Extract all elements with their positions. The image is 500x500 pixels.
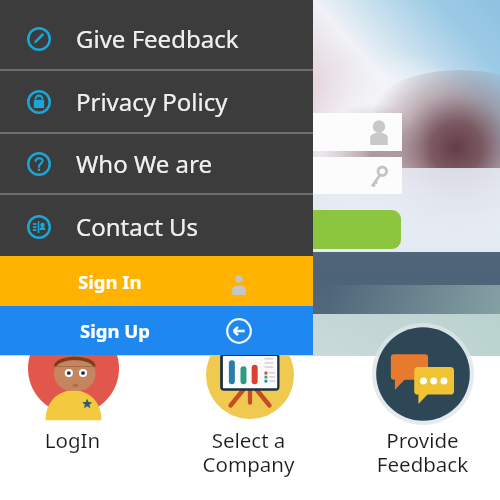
button[interactable]: Provide Feedback (362, 426, 483, 478)
other: Back (226, 318, 252, 344)
button[interactable] (190, 113, 402, 151)
staticText: Sign Up (80, 318, 150, 343)
button[interactable]: Sign In (0, 256, 313, 306)
staticText: Sign In (78, 269, 142, 294)
button[interactable]: Give Feedback (0, 8, 313, 69)
staticText: Contact Us (76, 210, 199, 243)
staticText: Give Feedback (76, 22, 239, 55)
staticText: Provide Feedback (362, 426, 483, 478)
button[interactable]: Sign Up (0, 306, 313, 355)
button[interactable]: Who We are (0, 134, 313, 193)
button[interactable]: Privacy Policy (0, 71, 313, 132)
button[interactable] (190, 210, 401, 249)
staticText: LogIn (12, 426, 133, 454)
button[interactable] (190, 157, 402, 194)
staticText: Privacy Policy (76, 85, 228, 118)
other: Account (231, 275, 247, 291)
button[interactable]: Select a Company (188, 426, 309, 478)
staticText: Select a Company (188, 426, 309, 478)
button[interactable]: LogIn (12, 426, 133, 454)
staticText: Who We are (76, 147, 212, 180)
button[interactable]: Contact Us (0, 195, 313, 258)
